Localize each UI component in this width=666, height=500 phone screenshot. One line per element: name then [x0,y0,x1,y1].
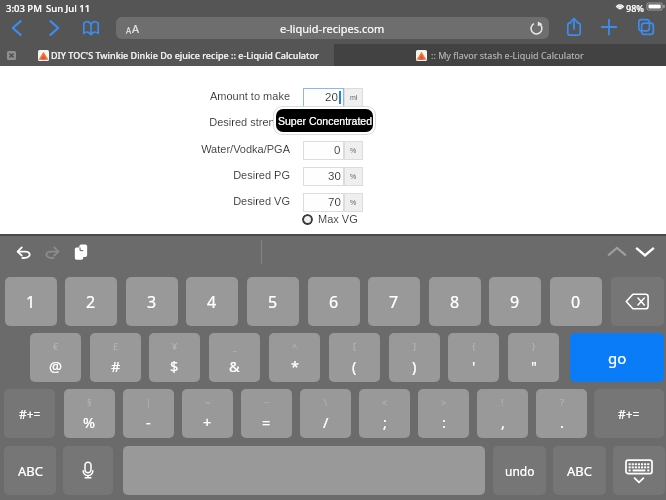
staticText: 3 [147,291,157,313]
staticText: 8 [450,291,460,313]
staticText: ] [413,340,416,352]
staticText: ' [472,356,476,376]
staticText: e-liquid-recipes.com [280,21,385,36]
staticText: go [608,348,627,368]
staticText: 1 [26,291,36,313]
button[interactable]: § [64,389,115,438]
button[interactable]: 1 [5,277,57,326]
button[interactable]: ABC [4,446,56,495]
button[interactable]: Max VG [302,213,358,225]
button[interactable]: } [508,333,559,382]
button[interactable]: Back [2,13,32,43]
button[interactable] [334,44,666,66]
staticText: ~ [205,396,211,408]
button[interactable]: A [116,17,549,39]
button[interactable]: 4 [186,277,238,326]
staticText: * [291,356,299,376]
staticText: ) [412,356,417,376]
staticText: £ [113,340,119,352]
staticText: [ [353,340,356,352]
staticText: 6 [329,291,339,313]
staticText: 30 [328,170,341,183]
button[interactable]: < [359,389,410,438]
button[interactable]: Share [558,11,590,43]
button[interactable]: ^ [269,333,320,382]
staticText: ABC [18,462,43,480]
staticText: 0 [334,144,341,157]
staticText: A [126,25,132,36]
staticText: 2 [86,291,96,313]
button[interactable]: Forward [39,13,69,43]
staticText: Desired PG [233,169,290,181]
button[interactable]: 3 [126,277,178,326]
button[interactable]: [ [329,333,380,382]
button[interactable]: #+= [594,389,664,438]
staticText: % [350,173,357,181]
staticText: 9 [510,291,520,313]
button[interactable]: 9 [489,277,541,326]
button[interactable]: Redo [38,239,66,267]
button[interactable]: Bookmarks [76,13,106,43]
staticText: % [350,199,357,207]
button[interactable]: Backspace [611,277,664,326]
button[interactable]: ABC [553,446,606,495]
button[interactable]: Hide keyboard [613,446,665,495]
staticText: ? [560,396,564,408]
button[interactable]: Dictation [63,446,113,495]
button[interactable]: { [448,333,499,382]
staticText: { [472,340,476,352]
staticText: + [203,412,212,432]
button[interactable]: _ [209,333,260,382]
button[interactable]: ··· [241,389,292,438]
staticText: ¥ [172,340,178,352]
staticText: 7 [389,291,399,313]
button[interactable]: Next field [628,235,662,269]
staticText: 0 [571,291,581,313]
button[interactable]: 5 [247,277,299,326]
button[interactable]: € [30,333,81,382]
button[interactable]: ? [536,389,587,438]
button[interactable]: undo [493,446,546,495]
staticText: 20 [325,91,338,104]
button[interactable]: Close tab [7,51,16,60]
button[interactable]: 7 [368,277,420,326]
button[interactable] [0,44,334,66]
staticText: € [53,340,59,352]
button[interactable]: Reload [528,20,545,37]
staticText: 3:03 PM [6,2,42,15]
staticText: Max VG [318,213,358,225]
staticText: # [111,356,121,376]
button[interactable]: Previous field [600,235,634,269]
button[interactable]: 0 [550,277,602,326]
button[interactable]: ¥ [149,333,200,382]
button[interactable]: 2 [65,277,117,326]
staticText: 70 [328,196,341,209]
button[interactable]: \ [300,389,351,438]
button[interactable]: New tab [593,11,625,43]
staticText: 5 [268,291,278,313]
button[interactable]: Paste [67,239,95,267]
button[interactable]: ~ [182,389,233,438]
button[interactable]: 8 [429,277,481,326]
staticText: ··· [263,396,271,408]
staticText: mg [349,120,359,128]
button[interactable]: | [123,389,174,438]
button[interactable]: £ [90,333,141,382]
staticText: < [382,396,388,408]
staticText: § [87,396,92,408]
staticText: > [441,396,447,408]
button[interactable]: 6 [308,277,360,326]
staticText: : [442,412,446,432]
button[interactable]: #+= [4,389,55,438]
staticText: _ [233,340,237,352]
button[interactable]: go [570,333,664,382]
button[interactable]: ! [477,389,528,438]
button[interactable]: ] [389,333,440,382]
staticText: $ [170,356,179,376]
button[interactable]: > [418,389,469,438]
button[interactable]: Undo [10,239,38,267]
staticText: Amount to make [209,90,290,102]
button[interactable]: Tabs [630,11,662,43]
staticText: Sun Jul 11 [46,2,91,15]
